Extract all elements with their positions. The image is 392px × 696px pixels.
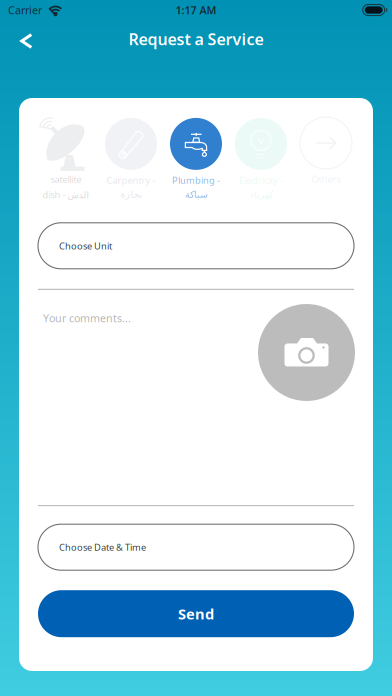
staticText: satellite xyxy=(50,173,81,185)
staticText: Send xyxy=(178,604,214,623)
staticText: Choose Unit xyxy=(59,240,112,252)
staticText: Choose Date & Time xyxy=(59,541,146,553)
button[interactable]: Electricity - xyxy=(228,118,293,200)
staticText: dish - الدش xyxy=(42,188,89,201)
staticText: Your comments... xyxy=(43,311,131,325)
staticText: Plumbing - xyxy=(172,174,220,186)
button[interactable]: Back xyxy=(0,25,47,57)
staticText: Carrier xyxy=(8,3,42,17)
staticText: 1:17 AM xyxy=(175,3,216,17)
staticText: كهرباء xyxy=(249,189,272,200)
button[interactable]: satellite xyxy=(33,117,98,201)
staticText: Request a Service xyxy=(128,28,263,50)
button[interactable]: Choose Date & Time xyxy=(38,524,354,570)
staticText: Electricity - xyxy=(239,174,283,186)
button[interactable]: Carpentry - xyxy=(98,118,163,200)
staticText: نجارة xyxy=(120,189,142,200)
staticText: Carpentry - xyxy=(106,174,155,186)
button[interactable]: Send xyxy=(38,590,354,637)
staticText: سباكة xyxy=(184,189,207,200)
button[interactable]: Plumbing - xyxy=(163,118,228,200)
staticText: Others xyxy=(311,173,340,185)
button[interactable]: Add photo xyxy=(258,304,355,401)
button[interactable]: Choose Unit xyxy=(38,223,354,269)
